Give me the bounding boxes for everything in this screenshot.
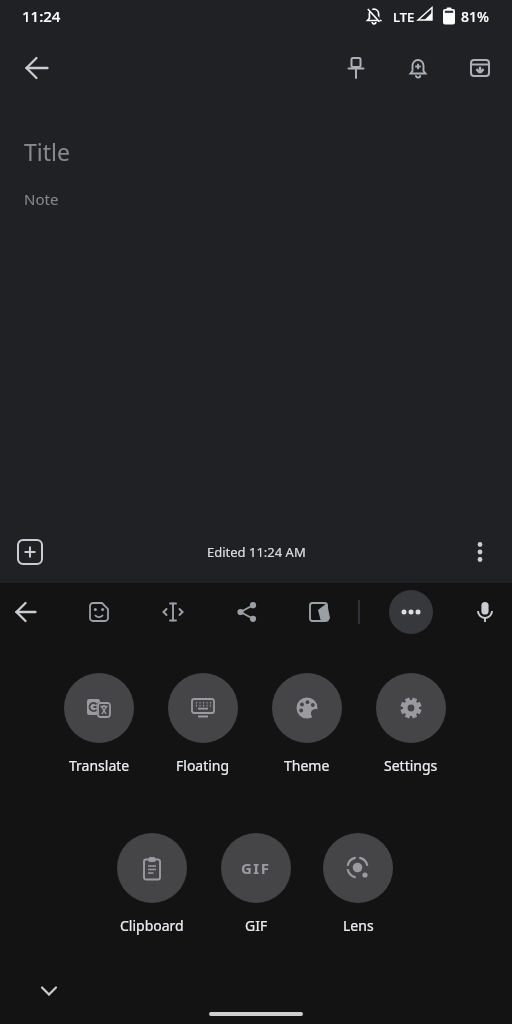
button[interactable]: GIF xyxy=(221,833,291,903)
button[interactable] xyxy=(168,673,238,743)
staticText: 11:24 xyxy=(22,6,61,26)
button[interactable] xyxy=(304,596,336,628)
button[interactable] xyxy=(272,673,342,743)
staticText: 81% xyxy=(461,7,489,26)
button[interactable] xyxy=(389,590,433,634)
button[interactable] xyxy=(323,833,393,903)
staticText: Theme xyxy=(284,756,330,775)
button[interactable] xyxy=(231,596,263,628)
staticText: Settings xyxy=(384,756,438,775)
staticText: GIF xyxy=(245,916,268,935)
staticText: GIF xyxy=(241,858,271,878)
button[interactable] xyxy=(117,833,187,903)
button[interactable] xyxy=(464,52,496,84)
button[interactable] xyxy=(10,596,42,628)
button[interactable] xyxy=(157,596,189,628)
button[interactable] xyxy=(469,596,501,628)
staticText: Lens xyxy=(343,916,374,935)
button[interactable] xyxy=(464,536,496,568)
button[interactable] xyxy=(14,536,46,568)
staticText: Title xyxy=(24,136,70,167)
button[interactable] xyxy=(64,673,134,743)
staticText: Floating xyxy=(176,756,230,775)
staticText: Edited 11:24 AM xyxy=(207,543,306,561)
staticText: Clipboard xyxy=(120,916,184,935)
button[interactable] xyxy=(83,596,115,628)
button[interactable] xyxy=(340,52,372,84)
button[interactable] xyxy=(376,673,446,743)
button[interactable] xyxy=(21,52,53,84)
staticText: LTE xyxy=(393,8,415,26)
staticText: Note xyxy=(24,189,59,209)
staticText: Translate xyxy=(69,756,130,775)
button[interactable] xyxy=(402,52,434,84)
button[interactable] xyxy=(33,975,65,1007)
